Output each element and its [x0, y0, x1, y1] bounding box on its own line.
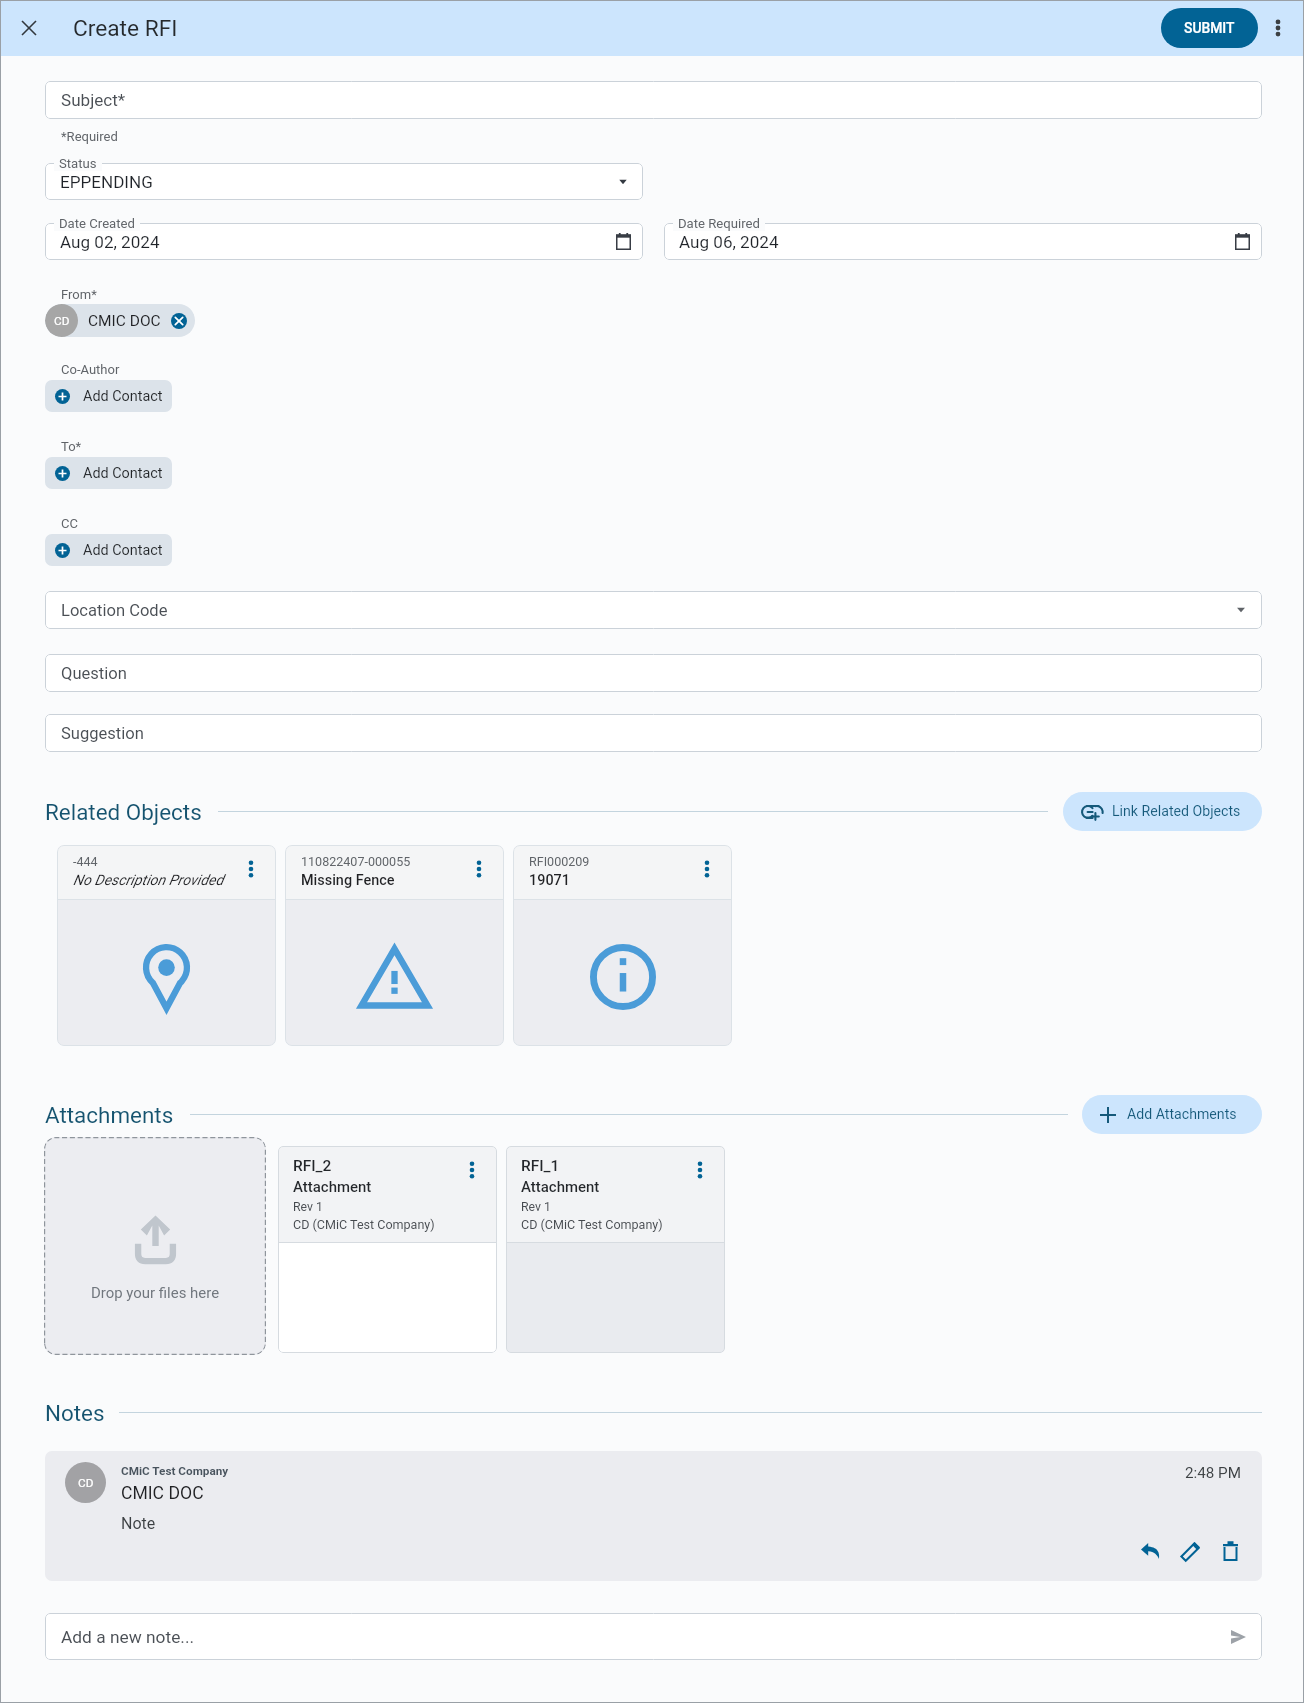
- staticText: CD: [78, 1476, 94, 1490]
- staticText: Notes: [45, 1400, 105, 1426]
- staticText: Note: [121, 1514, 156, 1533]
- staticText: -444: [73, 854, 98, 869]
- button[interactable]: Drop your files here: [44, 1137, 266, 1355]
- staticText: Add a new note...: [61, 1627, 195, 1647]
- staticText: Date Required: [678, 216, 760, 231]
- staticText: Create RFI: [73, 15, 178, 42]
- button[interactable]: Aug 02, 2024: [45, 223, 643, 260]
- staticText: 2:48 PM: [1185, 1464, 1242, 1482]
- staticText: Status: [59, 156, 97, 171]
- staticText: CD: [54, 314, 70, 328]
- staticText: CD (CMiC Test Company): [293, 1217, 435, 1232]
- staticText: Aug 06, 2024: [679, 232, 779, 252]
- staticText: Suggestion: [61, 724, 144, 743]
- button[interactable]: RFI_2: [278, 1146, 497, 1353]
- staticText: SUBMIT: [1184, 20, 1235, 36]
- staticText: CMiC Test Company: [121, 1464, 229, 1478]
- staticText: EPPENDING: [60, 172, 153, 192]
- staticText: From*: [61, 287, 97, 302]
- staticText: Add Contact: [83, 388, 163, 405]
- staticText: RFI_1: [521, 1157, 560, 1175]
- staticText: Related Objects: [45, 799, 202, 825]
- staticText: Attachment: [521, 1178, 600, 1196]
- button[interactable]: Suggestion: [45, 714, 1262, 752]
- button[interactable]: 110822407-000055: [285, 845, 504, 1046]
- staticText: Missing Fence: [301, 872, 395, 889]
- button[interactable]: Card options: [691, 853, 722, 884]
- button[interactable]: Delete: [1213, 1534, 1247, 1568]
- button[interactable]: -444: [57, 845, 276, 1046]
- button[interactable]: Attachment options: [456, 1154, 487, 1185]
- staticText: Subject*: [61, 90, 126, 110]
- staticText: 19071: [529, 872, 570, 889]
- button[interactable]: Add a new note...: [45, 1613, 1262, 1660]
- button[interactable]: Close: [9, 8, 49, 48]
- button[interactable]: Card options: [235, 853, 266, 884]
- staticText: Rev 1: [521, 1200, 551, 1214]
- staticText: CMIC DOC: [121, 1483, 204, 1504]
- button[interactable]: Add Contact: [45, 534, 172, 566]
- staticText: Link Related Objects: [1112, 803, 1241, 820]
- staticText: CC: [61, 516, 78, 531]
- staticText: Attachments: [45, 1102, 174, 1128]
- button[interactable]: CD: [45, 304, 195, 337]
- button[interactable]: Reply: [1133, 1534, 1167, 1568]
- staticText: Date Created: [59, 216, 135, 231]
- staticText: Add Attachments: [1127, 1106, 1237, 1123]
- button[interactable]: Link Related Objects: [1063, 792, 1262, 831]
- button[interactable]: Location Code: [45, 591, 1262, 629]
- staticText: *Required: [61, 129, 118, 144]
- button[interactable]: More options: [1258, 8, 1298, 48]
- staticText: Location Code: [61, 601, 168, 620]
- staticText: 110822407-000055: [301, 854, 411, 869]
- button[interactable]: CD: [45, 1451, 1262, 1581]
- button[interactable]: Add Contact: [45, 457, 172, 489]
- staticText: Add Contact: [83, 465, 163, 482]
- staticText: Aug 02, 2024: [60, 232, 160, 252]
- button[interactable]: Aug 06, 2024: [664, 223, 1262, 260]
- button[interactable]: Edit: [1173, 1534, 1207, 1568]
- button[interactable]: Attachment options: [684, 1154, 715, 1185]
- staticText: No Description Provided: [73, 872, 224, 889]
- staticText: Co-Author: [61, 362, 120, 377]
- button[interactable]: EPPENDING: [45, 163, 643, 200]
- staticText: Add Contact: [83, 542, 163, 559]
- button[interactable]: RFI000209: [513, 845, 732, 1046]
- button[interactable]: Subject*: [45, 81, 1262, 119]
- staticText: Rev 1: [293, 1200, 323, 1214]
- staticText: Question: [61, 664, 127, 683]
- staticText: Drop your files here: [91, 1284, 220, 1302]
- staticText: RFI_2: [293, 1157, 332, 1175]
- staticText: CD (CMiC Test Company): [521, 1217, 663, 1232]
- staticText: To*: [61, 439, 82, 454]
- button[interactable]: Add Attachments: [1082, 1095, 1262, 1134]
- staticText: RFI000209: [529, 854, 590, 869]
- staticText: CMIC DOC: [88, 312, 161, 330]
- staticText: Attachment: [293, 1178, 372, 1196]
- button[interactable]: SUBMIT: [1161, 8, 1258, 48]
- button[interactable]: Add Contact: [45, 380, 172, 412]
- button[interactable]: RFI_1: [506, 1146, 725, 1353]
- button[interactable]: Card options: [463, 853, 494, 884]
- button[interactable]: Question: [45, 654, 1262, 692]
